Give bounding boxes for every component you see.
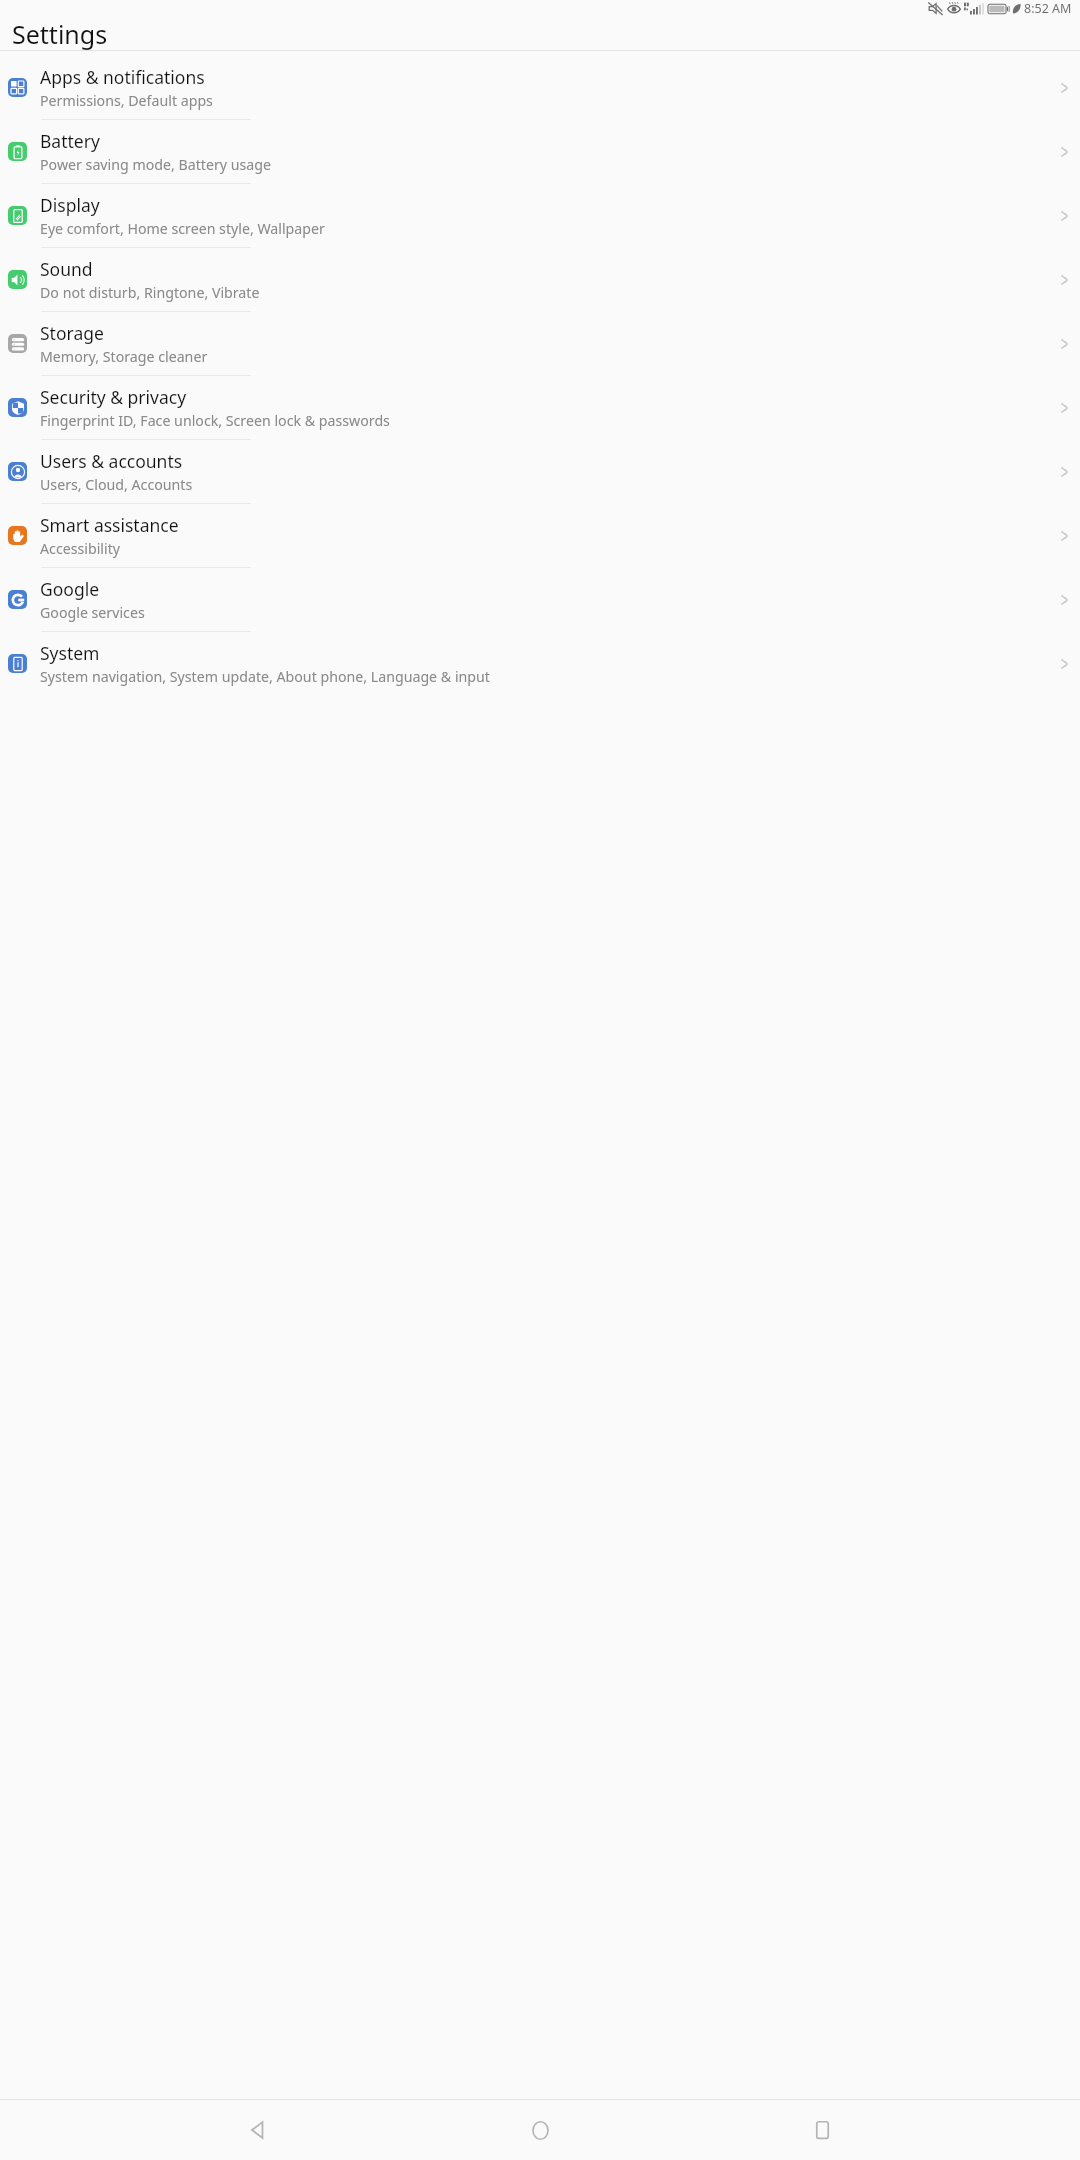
button[interactable]: System <box>0 632 1080 695</box>
staticText: Power saving mode, Battery usage <box>40 155 271 174</box>
staticText: Security & privacy <box>40 385 187 409</box>
button[interactable]: Display <box>0 184 1080 247</box>
button[interactable]: Recent apps <box>798 2106 846 2154</box>
staticText: Google services <box>40 603 145 622</box>
staticText: Apps & notifications <box>40 65 205 89</box>
button[interactable]: Storage <box>0 312 1080 375</box>
button[interactable]: Battery <box>0 120 1080 183</box>
button[interactable]: Smart assistance <box>0 504 1080 567</box>
staticText: Display <box>40 193 100 217</box>
staticText: System navigation, System update, About … <box>40 667 490 686</box>
staticText: Battery <box>40 129 100 153</box>
button[interactable]: Home <box>516 2106 564 2154</box>
staticText: Settings <box>12 17 108 50</box>
button[interactable]: Google <box>0 568 1080 631</box>
staticText: Eye comfort, Home screen style, Wallpape… <box>40 219 325 238</box>
staticText: Users, Cloud, Accounts <box>40 475 193 494</box>
staticText: Sound <box>40 257 93 281</box>
button[interactable]: Users & accounts <box>0 440 1080 503</box>
staticText: Do not disturb, Ringtone, Vibrate <box>40 283 260 302</box>
staticText: 8:52 AM <box>1024 0 1072 17</box>
staticText: Permissions, Default apps <box>40 91 213 110</box>
staticText: System <box>40 641 100 665</box>
button[interactable]: Apps & notifications <box>0 56 1080 119</box>
staticText: Memory, Storage cleaner <box>40 347 208 366</box>
staticText: Accessibility <box>40 539 121 558</box>
staticText: Fingerprint ID, Face unlock, Screen lock… <box>40 411 390 430</box>
staticText: Storage <box>40 321 104 345</box>
button[interactable]: Back <box>234 2106 282 2154</box>
staticText: Smart assistance <box>40 513 179 537</box>
staticText: Users & accounts <box>40 449 183 473</box>
button[interactable]: Sound <box>0 248 1080 311</box>
staticText: Google <box>40 577 100 601</box>
button[interactable]: Security & privacy <box>0 376 1080 439</box>
